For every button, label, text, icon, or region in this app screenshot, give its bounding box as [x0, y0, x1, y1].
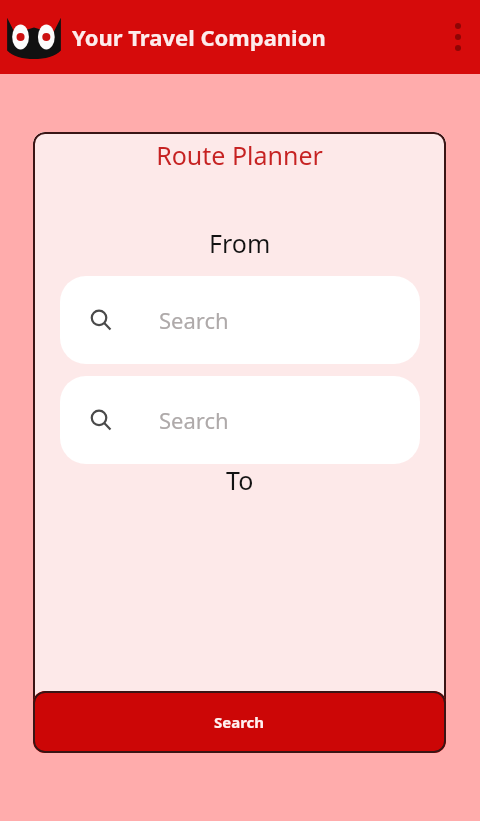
staticText: Route Planner — [156, 138, 323, 172]
staticText: Search — [159, 305, 229, 335]
button[interactable]: Search — [60, 276, 420, 364]
staticText: To — [226, 463, 254, 497]
staticText: Search — [159, 405, 229, 435]
other: Search — [90, 409, 112, 431]
button[interactable]: Search — [33, 691, 446, 753]
staticText: Your Travel Companion — [72, 22, 326, 52]
other: Search — [90, 309, 112, 331]
staticText: Search — [214, 712, 265, 732]
other: App logo — [6, 13, 62, 61]
staticText: From — [209, 226, 271, 260]
button[interactable]: More options — [436, 0, 480, 74]
button[interactable]: Search — [60, 376, 420, 464]
